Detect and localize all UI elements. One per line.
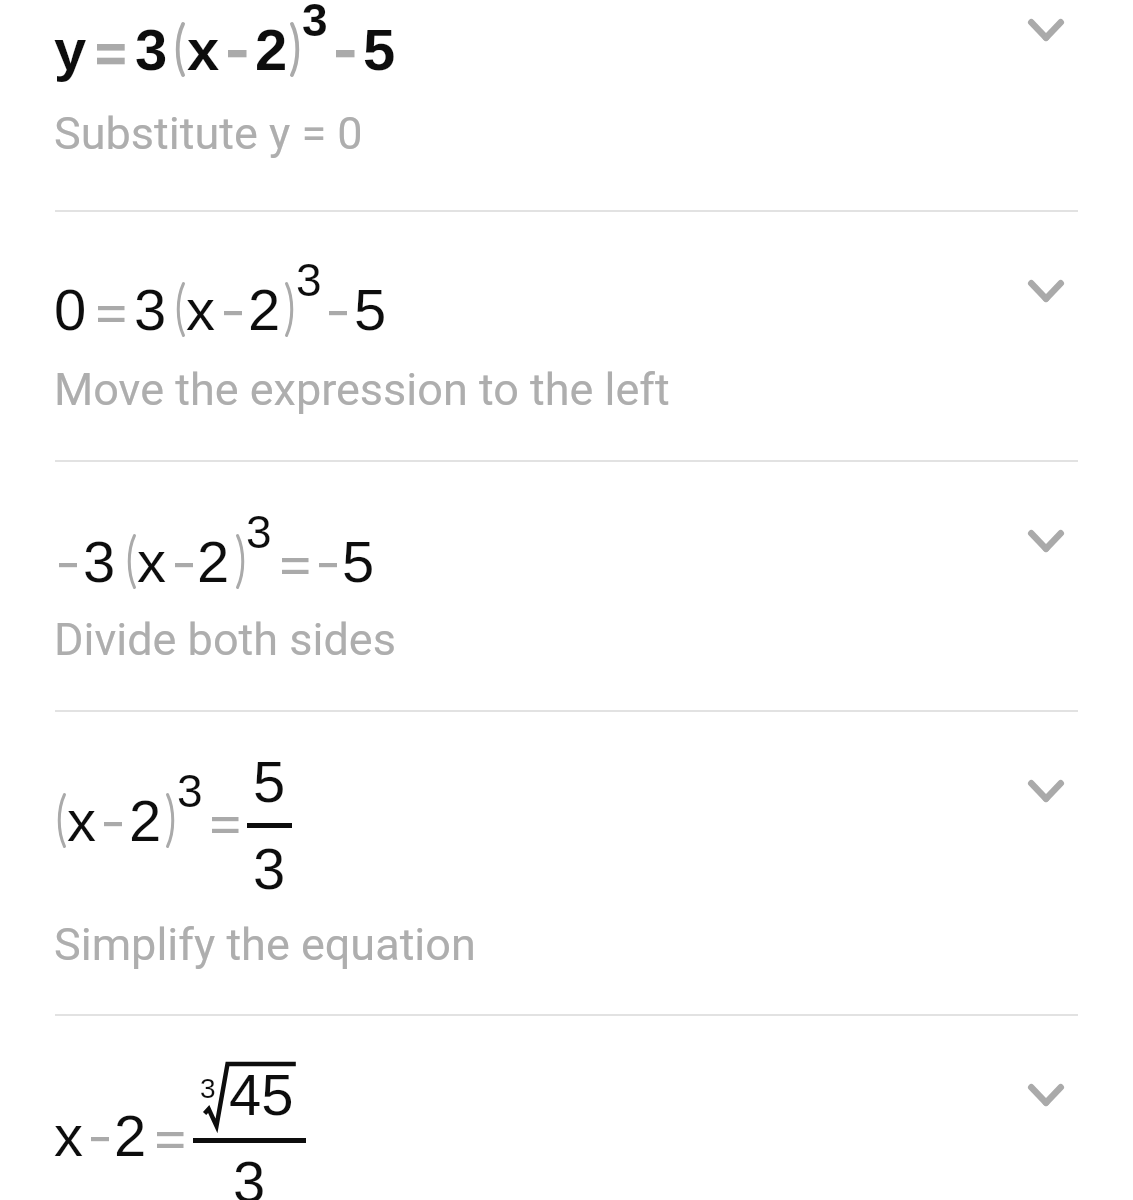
button[interactable]: 3 xyxy=(0,463,1133,711)
staticText: Divide both sides xyxy=(54,613,396,666)
button[interactable]: 0 xyxy=(0,213,1133,461)
staticText: x xyxy=(186,277,215,342)
other: Expand step xyxy=(1028,780,1064,802)
staticText: 3 xyxy=(83,529,116,594)
staticText: Simplify the equation xyxy=(54,918,476,971)
staticText: 5 xyxy=(253,749,286,814)
staticText: 2 xyxy=(129,788,162,853)
staticText: 5 xyxy=(354,277,387,342)
other: Expand step xyxy=(1028,19,1064,41)
staticText: 3 xyxy=(302,0,328,45)
staticText: 0 xyxy=(54,277,87,342)
staticText: 5 xyxy=(342,529,375,594)
button[interactable]: x xyxy=(0,1017,1133,1200)
staticText: y xyxy=(54,17,87,82)
staticText: 2 xyxy=(114,1103,147,1168)
staticText: 3 xyxy=(134,277,167,342)
staticText: 3 xyxy=(177,765,203,816)
staticText: 5 xyxy=(363,17,396,82)
staticText: 3 xyxy=(135,17,168,82)
staticText: 3 xyxy=(233,1149,266,1200)
staticText: 3 xyxy=(253,836,286,901)
staticText: 2 xyxy=(255,17,288,82)
staticText: x xyxy=(187,17,220,82)
button[interactable]: y xyxy=(0,0,1133,211)
staticText: x xyxy=(67,788,96,853)
staticText: Substitute y = 0 xyxy=(54,107,363,160)
staticText: 2 xyxy=(197,529,230,594)
staticText: x xyxy=(137,529,166,594)
staticText: 45 xyxy=(229,1062,294,1127)
other: Expand step xyxy=(1028,530,1064,552)
staticText: Move the expression to the left xyxy=(54,363,670,416)
staticText: 2 xyxy=(248,277,281,342)
other: Expand step xyxy=(1028,1084,1064,1106)
staticText: 3 xyxy=(296,254,322,305)
staticText: x xyxy=(54,1103,83,1168)
other: Expand step xyxy=(1028,280,1064,302)
staticText: 3 xyxy=(246,506,272,557)
button[interactable]: x xyxy=(0,713,1133,1015)
staticText: 3 xyxy=(200,1073,216,1104)
